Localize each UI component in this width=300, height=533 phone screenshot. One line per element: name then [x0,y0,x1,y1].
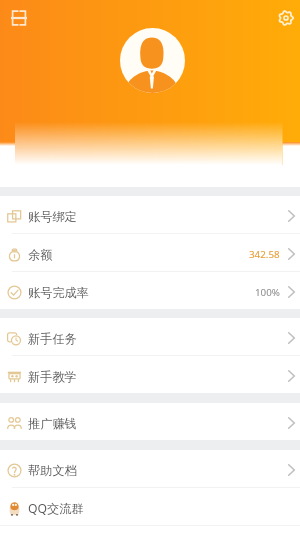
button[interactable]: Profile avatar [120,28,185,93]
staticText: 100% [255,286,280,299]
button[interactable]: Scan QR code [6,5,32,31]
button[interactable]: 账号绑定 [0,196,300,233]
button[interactable]: 新手任务 [0,318,300,355]
button[interactable]: 推广赚钱 [0,403,300,440]
staticText: 新手任务 [28,331,77,346]
staticText: 推广赚钱 [28,416,77,431]
button[interactable]: 新手教学 [0,356,300,393]
button[interactable]: 帮助文档 [0,450,300,487]
button[interactable]: 账号完成率 [0,272,300,309]
staticText: 帮助文档 [28,463,77,478]
staticText: 账号绑定 [28,209,77,224]
staticText: 342.58 [249,248,280,261]
staticText: 余额 [28,247,53,262]
button[interactable]: QQ交流群 [0,488,300,525]
staticText: 新手教学 [28,369,77,384]
button[interactable]: 余额 [0,234,300,271]
staticText: 账号完成率 [28,285,89,300]
button[interactable]: Settings [273,5,299,31]
staticText: QQ交流群 [28,500,84,517]
